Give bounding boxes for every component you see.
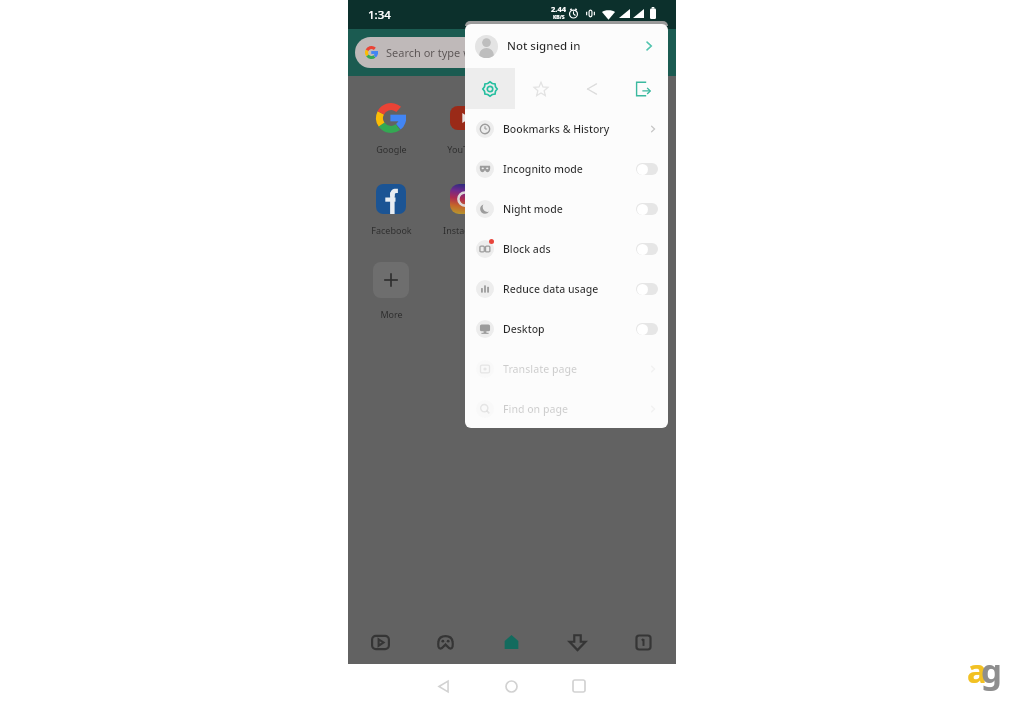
button[interactable]: Bookmarks & History: [465, 109, 668, 149]
button[interactable]: Night mode: [465, 189, 668, 229]
button[interactable]: More: [361, 262, 421, 320]
staticText: More: [380, 308, 403, 320]
button[interactable]: Google: [361, 103, 421, 155]
button[interactable]: Bookmark: [515, 68, 566, 109]
staticText: YouTube: [447, 143, 484, 155]
button[interactable]: Recents: [562, 669, 596, 703]
button[interactable]: Desktop: [465, 309, 668, 349]
button[interactable]: Tabs: [610, 620, 676, 664]
staticText: Google: [376, 143, 407, 155]
button[interactable]: Twitter: [509, 184, 569, 236]
staticText: 2.44: [551, 4, 566, 14]
staticText: Search or type web address: [386, 45, 529, 60]
staticText: Not signed in: [507, 38, 581, 54]
staticText: Incognito mode: [503, 162, 583, 176]
button[interactable]: Amazon: [509, 103, 569, 155]
button[interactable]: Exit: [617, 68, 668, 109]
button[interactable]: Share: [566, 68, 617, 109]
staticText: Night mode: [503, 202, 563, 216]
staticText: Block ads: [503, 242, 551, 256]
staticText: g: [981, 648, 1002, 693]
button[interactable]: Home: [478, 620, 544, 664]
staticText: Desktop: [503, 322, 545, 336]
button[interactable]: Block ads: [465, 229, 668, 269]
staticText: Facebook: [371, 224, 412, 236]
button[interactable]: Home: [494, 669, 528, 703]
staticText: Bookmarks & History: [503, 122, 610, 136]
staticText: KB/S: [553, 14, 565, 21]
button[interactable]: Facebook: [361, 184, 421, 236]
button[interactable]: Games: [413, 620, 478, 664]
staticText: 1:34: [368, 7, 391, 23]
button[interactable]: Not signed in: [465, 24, 668, 68]
button[interactable]: Incognito mode: [465, 149, 668, 189]
staticText: Translate page: [503, 362, 577, 376]
staticText: Instagram: [443, 224, 487, 236]
button[interactable]: Find on page: [465, 389, 668, 428]
staticText: Find on page: [503, 402, 568, 416]
button[interactable]: Settings: [465, 68, 515, 109]
button[interactable]: Wikipedia: [583, 103, 643, 155]
button[interactable]: Search or type web address: [355, 37, 660, 68]
button[interactable]: YouTube: [435, 103, 495, 155]
staticText: Reduce data usage: [503, 282, 599, 296]
button[interactable]: Reduce data usage: [465, 269, 668, 309]
button[interactable]: Translate page: [465, 349, 668, 389]
button[interactable]: Back: [426, 669, 460, 703]
button[interactable]: Downloads: [544, 620, 610, 664]
staticText: a: [967, 648, 987, 693]
button[interactable]: Instagram: [435, 184, 495, 236]
button[interactable]: Video: [348, 620, 413, 664]
